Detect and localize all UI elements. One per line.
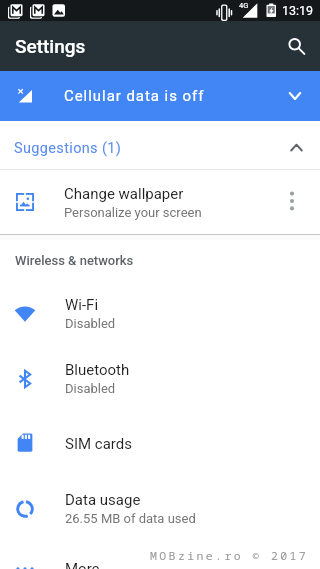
button[interactable]: Collapse suggestions bbox=[274, 121, 320, 169]
staticText: More bbox=[65, 560, 100, 569]
button[interactable]: More options bbox=[263, 170, 320, 234]
button[interactable]: Bluetooth bbox=[0, 346, 320, 411]
button[interactable]: SIM cards bbox=[0, 411, 320, 476]
staticText: Personalize your screen bbox=[64, 205, 202, 220]
staticText: Bluetooth bbox=[65, 361, 130, 379]
staticText: 13:19 bbox=[282, 3, 314, 18]
staticText: Suggestions (1) bbox=[14, 140, 122, 157]
staticText: MOBzine.ro © 2017 bbox=[150, 548, 309, 564]
staticText: Cellular data is off bbox=[64, 87, 205, 105]
staticText: Change wallpaper bbox=[64, 185, 184, 203]
staticText: Disabled bbox=[65, 316, 116, 331]
button[interactable]: Data usage bbox=[0, 476, 320, 541]
staticText: Settings bbox=[15, 35, 86, 57]
button[interactable]: Cellular data is off bbox=[0, 71, 320, 121]
staticText: 4G bbox=[239, 1, 249, 10]
button[interactable]: More bbox=[0, 541, 320, 569]
button[interactable]: Suggestions (1) bbox=[0, 121, 320, 169]
button[interactable]: Wi-Fi bbox=[0, 281, 320, 346]
staticText: Disabled bbox=[65, 381, 116, 396]
button[interactable]: Search bbox=[272, 21, 320, 71]
staticText: Wireless & networks bbox=[15, 253, 134, 268]
staticText: 26.55 MB of data used bbox=[65, 511, 196, 526]
button[interactable]: Change wallpaper bbox=[0, 170, 320, 234]
staticText: SIM cards bbox=[65, 435, 132, 453]
staticText: Data usage bbox=[65, 491, 141, 509]
staticText: Wi-Fi bbox=[65, 296, 99, 314]
